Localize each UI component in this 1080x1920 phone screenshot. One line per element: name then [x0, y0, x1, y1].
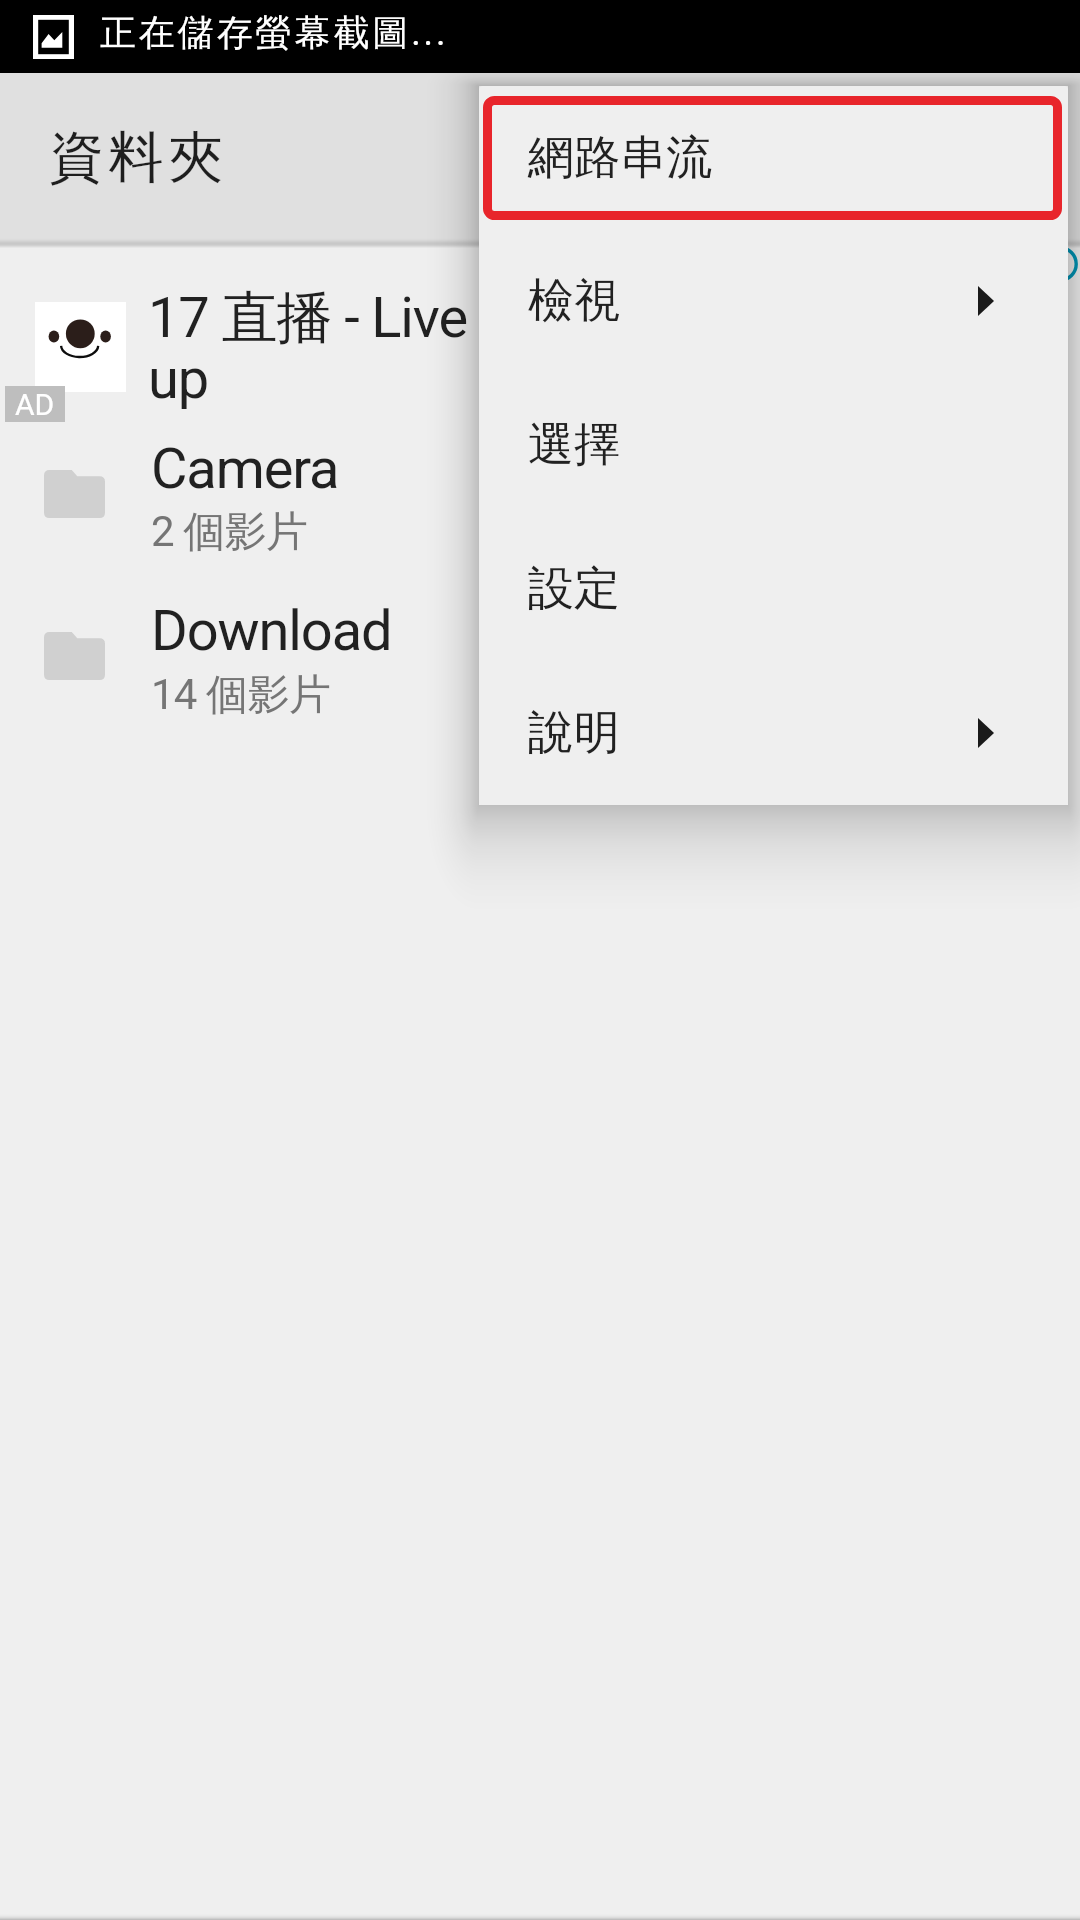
staticText: 2 個影片 [151, 506, 308, 559]
staticText: 網路串流 [528, 129, 712, 187]
button[interactable]: 設定 [479, 517, 1068, 661]
button[interactable]: 選擇 [479, 373, 1068, 517]
button[interactable] [0, 426, 1080, 583]
button[interactable] [0, 241, 1080, 426]
button[interactable]: 網路串流 [479, 86, 1068, 230]
staticText: 檢視 [528, 272, 620, 330]
button[interactable] [0, 588, 1080, 745]
staticText: 選擇 [528, 416, 620, 474]
staticText: up [148, 346, 209, 412]
staticText: AD [15, 387, 55, 422]
staticText: 資料夾 [49, 123, 228, 192]
staticText: 14 個影片 [151, 669, 330, 722]
button[interactable]: 檢視 [479, 229, 1068, 373]
staticText: Camera [151, 436, 339, 502]
staticText: 說明 [528, 704, 620, 762]
staticText: 正在儲存螢幕截圖... [100, 10, 449, 55]
staticText: 設定 [528, 560, 620, 618]
staticText: Download [151, 598, 392, 664]
button[interactable]: Info [1042, 246, 1078, 282]
button[interactable]: 說明 [479, 661, 1068, 805]
staticText: 17 直播 - Live 上 [148, 283, 535, 354]
